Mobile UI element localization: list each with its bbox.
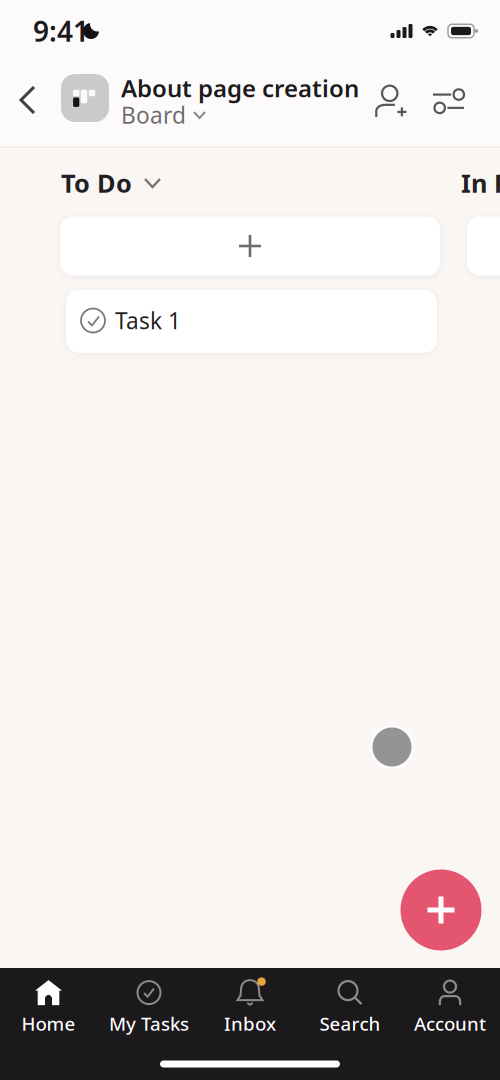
button[interactable]: To Do (61, 168, 171, 198)
staticText: In Progress (461, 166, 500, 200)
button[interactable]: Filter (425, 81, 472, 120)
staticText: To Do (61, 166, 132, 200)
button[interactable]: My Tasks (101, 979, 197, 1037)
button[interactable]: Task 1 (66, 290, 437, 353)
button[interactable]: Home (0, 979, 96, 1037)
button[interactable]: Back (11, 77, 44, 123)
button[interactable]: New task (400, 869, 481, 950)
button[interactable]: Account (402, 979, 498, 1037)
staticText: About page creation (121, 72, 359, 104)
button[interactable]: Search (302, 979, 398, 1037)
staticText: Account (414, 1011, 486, 1036)
staticText: Inbox (224, 1011, 276, 1036)
button[interactable]: Add task (60, 216, 440, 275)
button[interactable]: Board (121, 103, 221, 127)
staticText: My Tasks (109, 1011, 189, 1036)
staticText: Board (121, 100, 186, 130)
staticText: Home (21, 1011, 75, 1036)
staticText: Search (319, 1011, 380, 1036)
button[interactable]: Inbox (202, 979, 298, 1037)
button[interactable]: Invite (369, 79, 413, 123)
staticText: Task 1 (115, 305, 181, 335)
staticText: 9:41 (33, 12, 89, 50)
